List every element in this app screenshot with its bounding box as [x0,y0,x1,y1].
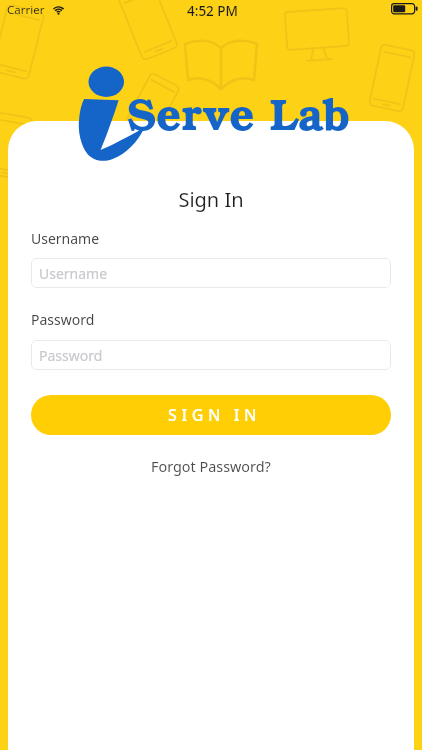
staticText: Carrier [7,2,45,18]
staticText: Sign In [0,186,422,213]
staticText: Password [39,346,103,365]
staticText: Username [39,264,108,283]
button[interactable]: Password [31,340,391,370]
staticText: Username [31,229,100,248]
staticText: 4:52 PM [187,2,238,20]
staticText: Password [31,310,95,329]
button[interactable]: Username [31,258,391,288]
other: Battery level [391,3,418,14]
button[interactable]: SIGN IN [31,395,391,435]
staticText: Serve Lab [127,79,350,143]
other: Wi-Fi signal [52,4,65,14]
staticText: SIGN IN [168,404,261,426]
staticText: Forgot Password? [151,457,271,477]
button[interactable]: Forgot Password? [145,453,277,481]
